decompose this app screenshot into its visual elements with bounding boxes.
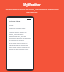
staticText: Duis aute irure dolor in reprehenderit v… [9,42,31,50]
staticText: Lorem ipsum dolor sit amet, consectetur … [4,8,60,14]
staticText: Article title [9,20,21,23]
staticText: MyWeather [23,3,41,7]
staticText: Today [9,24,14,26]
staticText: Lorem ipsum dolor sit amet, consectetur … [9,31,31,41]
staticText: Weather update news [9,27,26,29]
